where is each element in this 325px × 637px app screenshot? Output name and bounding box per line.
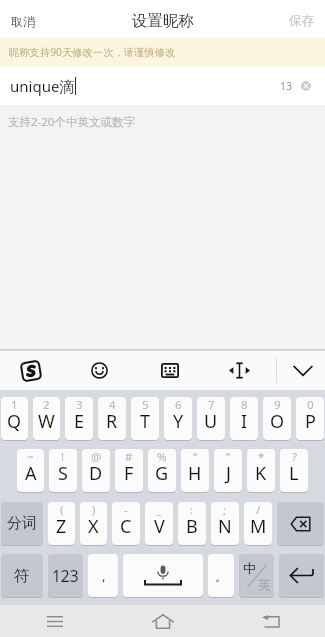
staticText: - (124, 502, 128, 518)
staticText: Y (173, 409, 184, 434)
button[interactable]: ~ (17, 449, 44, 492)
button[interactable]: ; (211, 502, 239, 545)
staticText: 支持2-20个中英文或数字 (8, 114, 135, 130)
staticText: C (120, 514, 132, 539)
button[interactable]: Enter (279, 554, 324, 597)
button[interactable]: “ (181, 449, 209, 492)
button[interactable]: Move cursor (209, 351, 270, 390)
button[interactable]: Sogou input method (0, 351, 61, 390)
button[interactable]: @ (82, 449, 110, 492)
staticText: F (124, 461, 134, 486)
button[interactable]: Hide keyboard (272, 351, 325, 390)
staticText: L (289, 461, 299, 486)
staticText: * (258, 449, 265, 465)
button[interactable]: 6 (164, 397, 192, 440)
staticText: % (157, 449, 167, 465)
staticText: 中 (243, 560, 256, 576)
button[interactable]: 5 (131, 397, 159, 440)
staticText: 6 (175, 397, 182, 413)
staticText: B (186, 514, 198, 539)
button[interactable]: 保存 (278, 5, 325, 37)
staticText: T (140, 409, 151, 434)
staticText: 符 (14, 566, 30, 586)
staticText: 13 (280, 79, 293, 93)
staticText: W (38, 409, 55, 434)
staticText: 123 (52, 565, 79, 586)
staticText: ~ (27, 449, 34, 465)
button[interactable]: 3 (65, 397, 93, 440)
button[interactable]: # (115, 449, 143, 492)
staticText: 8 (241, 397, 248, 413)
button[interactable]: 取消 (0, 5, 46, 37)
staticText: I (241, 409, 248, 434)
button[interactable]: ( (48, 502, 75, 545)
button[interactable]: 8 (230, 397, 258, 440)
staticText: 7 (208, 397, 215, 413)
staticText: P (305, 409, 316, 434)
button[interactable]: _ (145, 502, 173, 545)
staticText: ( (60, 502, 64, 518)
staticText: 保存 (289, 13, 314, 29)
staticText: Q (7, 409, 22, 434)
staticText: / (256, 502, 261, 518)
button[interactable]: ， (88, 554, 118, 597)
button[interactable]: ” (214, 449, 242, 492)
staticText: 3 (76, 397, 83, 413)
staticText: @ (91, 449, 102, 465)
button[interactable]: 123 (48, 554, 83, 597)
staticText: ， (97, 568, 110, 584)
button[interactable]: 0 (296, 397, 324, 440)
button[interactable]: 符 (1, 554, 43, 597)
button[interactable]: Keyboard layout (139, 351, 200, 390)
staticText: unique滴 (10, 76, 75, 96)
button[interactable]: ? (280, 449, 308, 492)
staticText: 9 (274, 397, 281, 413)
staticText: ? (292, 449, 297, 465)
staticText: S (58, 461, 68, 486)
button[interactable]: Space (123, 554, 203, 597)
button[interactable]: Home (109, 605, 217, 637)
button[interactable]: ) (80, 502, 107, 545)
button[interactable]: : (178, 502, 206, 545)
staticText: 5 (142, 397, 149, 413)
staticText: V (154, 514, 165, 539)
staticText: E (74, 409, 85, 434)
button[interactable]: Recent apps (0, 605, 109, 637)
staticText: M (250, 514, 267, 539)
staticText: # (125, 449, 133, 465)
staticText: 英 (258, 576, 271, 592)
button[interactable]: 7 (197, 397, 225, 440)
staticText: O (270, 409, 285, 434)
staticText: 设置昵称 (132, 11, 194, 31)
staticText: 2 (43, 397, 50, 413)
staticText: 4 (109, 397, 116, 413)
staticText: ; (223, 502, 227, 518)
button[interactable]: * (247, 449, 275, 492)
staticText: H (188, 461, 202, 486)
staticText: X (88, 514, 99, 539)
staticText: 昵称支持90天修改一次，请谨慎修改 (9, 45, 176, 59)
button[interactable]: Switch Chinese English (239, 554, 274, 597)
button[interactable]: Backspace (277, 502, 324, 545)
button[interactable]: Emoji (69, 351, 130, 390)
staticText: N (218, 514, 232, 539)
staticText: ! (61, 449, 65, 465)
staticText: K (255, 461, 267, 486)
button[interactable]: ! (49, 449, 77, 492)
staticText: 1 (11, 397, 18, 413)
button[interactable]: Clear text (301, 81, 311, 91)
button[interactable]: 。 (208, 554, 234, 597)
button[interactable]: 9 (263, 397, 291, 440)
button[interactable]: / (244, 502, 272, 545)
button[interactable]: 分词 (1, 502, 43, 545)
staticText: J (226, 461, 231, 486)
button[interactable]: 1 (1, 397, 28, 440)
button[interactable]: % (148, 449, 176, 492)
staticText: Z (56, 514, 67, 539)
button[interactable]: Back (217, 605, 325, 637)
staticText: R (106, 409, 118, 434)
staticText: ” (226, 449, 231, 465)
button[interactable]: - (112, 502, 140, 545)
button[interactable]: 4 (98, 397, 126, 440)
button[interactable]: 2 (33, 397, 60, 440)
